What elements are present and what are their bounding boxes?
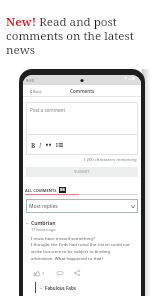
staticText: Most replies: [29, 203, 58, 210]
staticText: Cumbrian: [31, 220, 56, 227]
staticText: 1: [42, 271, 45, 276]
staticText: 55: [60, 187, 65, 193]
staticText: B: [31, 141, 36, 149]
button[interactable]: Quote: [46, 142, 52, 148]
button[interactable]: Bold: [31, 141, 36, 149]
button[interactable]: SUBMIT: [26, 167, 138, 177]
button[interactable]: ALL COMMENTS: [25, 187, 66, 193]
staticText: New! Read and post comments on the lates…: [6, 14, 146, 58]
staticText: 11 hours ago: [31, 227, 56, 232]
button[interactable]: Share: [74, 270, 80, 276]
staticText: I: [39, 141, 42, 149]
staticText: Comments: [70, 88, 95, 94]
button[interactable]: Like, 1: [34, 271, 45, 276]
staticText: –: [26, 220, 29, 227]
button[interactable]: Reply: [57, 271, 63, 276]
button[interactable]: List: [56, 142, 63, 148]
staticText: I must have missed something? I thought …: [31, 235, 130, 262]
staticText: SUBMIT: [74, 169, 90, 175]
button[interactable]: Most replies: [26, 199, 138, 213]
staticText: 1,200 characters remaining: [83, 157, 137, 163]
staticText: Post a comment: [30, 107, 66, 113]
staticText: Back: [33, 89, 42, 94]
staticText: –: [40, 285, 43, 291]
button[interactable]: Back: [23, 87, 45, 96]
staticText: ALL COMMENTS: [25, 188, 57, 193]
button[interactable]: Italic: [39, 141, 42, 149]
staticText: Fabulous Fabs: [45, 285, 76, 291]
staticText: 9:30: [26, 78, 34, 83]
